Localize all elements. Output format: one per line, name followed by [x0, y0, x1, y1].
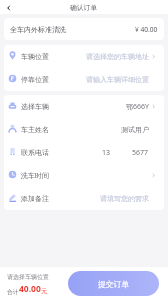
staticText: 全车内外标准清洗: [10, 25, 66, 34]
staticText: ¥ 40.00: [135, 25, 158, 34]
staticText: 40.00: [19, 283, 41, 295]
staticText: 元: [41, 287, 48, 295]
staticText: 合计: [7, 288, 19, 295]
staticText: 请输入车辆详细位置: [86, 75, 149, 84]
staticText: 13: [102, 148, 111, 158]
button[interactable]: 车辆位置: [4, 45, 164, 68]
button[interactable]: 洗车时间: [4, 164, 164, 187]
button[interactable]: 停靠位置: [4, 68, 164, 91]
button[interactable]: 提交订单: [68, 271, 159, 296]
staticText: 测试用户: [121, 125, 149, 134]
staticText: 请选择车辆位置: [7, 273, 49, 281]
staticText: 请填写您的需求: [100, 194, 149, 203]
button[interactable]: 选择车辆: [4, 95, 164, 118]
staticText: 添加备注: [21, 194, 49, 203]
button[interactable]: 联系电话: [4, 141, 164, 164]
staticText: 选择车辆: [21, 102, 49, 111]
staticText: 车主姓名: [21, 125, 49, 134]
staticText: 停靠位置: [21, 75, 49, 84]
staticText: 联系电话: [21, 148, 49, 157]
button[interactable]: 添加备注: [4, 187, 164, 210]
button[interactable]: Back: [3, 2, 14, 13]
staticText: 洗车时间: [21, 171, 49, 180]
staticText: 5677: [132, 148, 149, 158]
staticText: 提交订单: [98, 279, 130, 289]
staticText: 确认订单: [70, 3, 98, 12]
staticText: 鄂666Y: [126, 102, 149, 112]
staticText: 请选择您的车辆地址: [86, 52, 149, 61]
button[interactable]: 车主姓名: [4, 118, 164, 141]
staticText: 车辆位置: [21, 52, 49, 61]
